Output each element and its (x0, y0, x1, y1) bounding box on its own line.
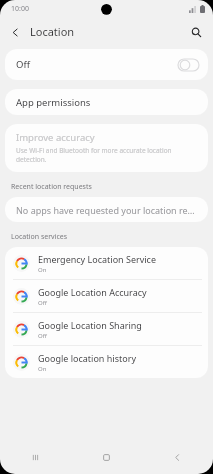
staticText: Recent location requests (11, 182, 92, 192)
button[interactable]: Search (187, 23, 205, 41)
staticText: Improve accuracy (16, 131, 95, 144)
staticText: Off (16, 58, 30, 71)
staticText: Location services (11, 232, 68, 242)
button[interactable]: App permissions (5, 89, 208, 115)
button[interactable]: Google location history (5, 346, 208, 378)
button[interactable]: Emergency Location Service (5, 247, 208, 279)
staticText: Google Location Accuracy (38, 286, 147, 298)
button[interactable]: Back (6, 23, 24, 41)
staticText: Use Wi-Fi and Bluetooth for more accurat… (16, 146, 192, 164)
staticText: No apps have requested your location rec… (16, 204, 197, 216)
staticText: Off (38, 299, 47, 307)
staticText: Google location history (38, 352, 136, 364)
button[interactable]: Home (71, 440, 142, 474)
staticText: Off (38, 332, 47, 340)
staticText: App permissions (16, 96, 91, 109)
staticText: On (38, 365, 47, 373)
staticText: Location (30, 24, 75, 39)
button[interactable]: Google Location Accuracy (5, 280, 208, 312)
button[interactable]: Improve accuracy (5, 124, 208, 172)
staticText: Google Location Sharing (38, 319, 142, 331)
button[interactable]: Off (5, 49, 208, 80)
button[interactable]: Recents (0, 440, 71, 474)
button[interactable]: Google Location Sharing (5, 313, 208, 345)
staticText: On (38, 266, 47, 274)
staticText: Emergency Location Service (38, 253, 157, 265)
staticText: 10:00 (11, 4, 29, 14)
button[interactable]: Back (142, 440, 213, 474)
